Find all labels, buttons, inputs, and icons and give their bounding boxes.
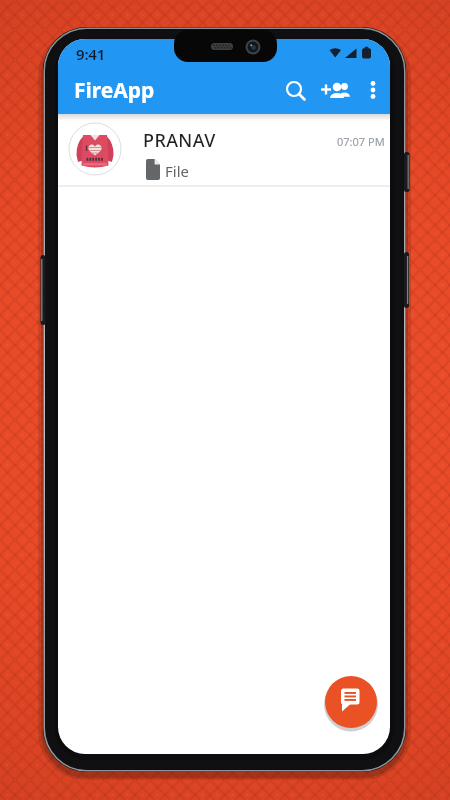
staticText: File (165, 161, 189, 181)
staticText: 9:41 (76, 44, 106, 64)
button[interactable] (364, 79, 382, 97)
button[interactable]: PRANAV (58, 115, 390, 186)
button[interactable] (318, 77, 348, 107)
button[interactable] (282, 77, 308, 103)
staticText: FireApp (74, 76, 155, 105)
button[interactable] (325, 676, 377, 728)
staticText: PRANAV (143, 128, 216, 153)
staticText: 07:07 PM (337, 134, 385, 149)
